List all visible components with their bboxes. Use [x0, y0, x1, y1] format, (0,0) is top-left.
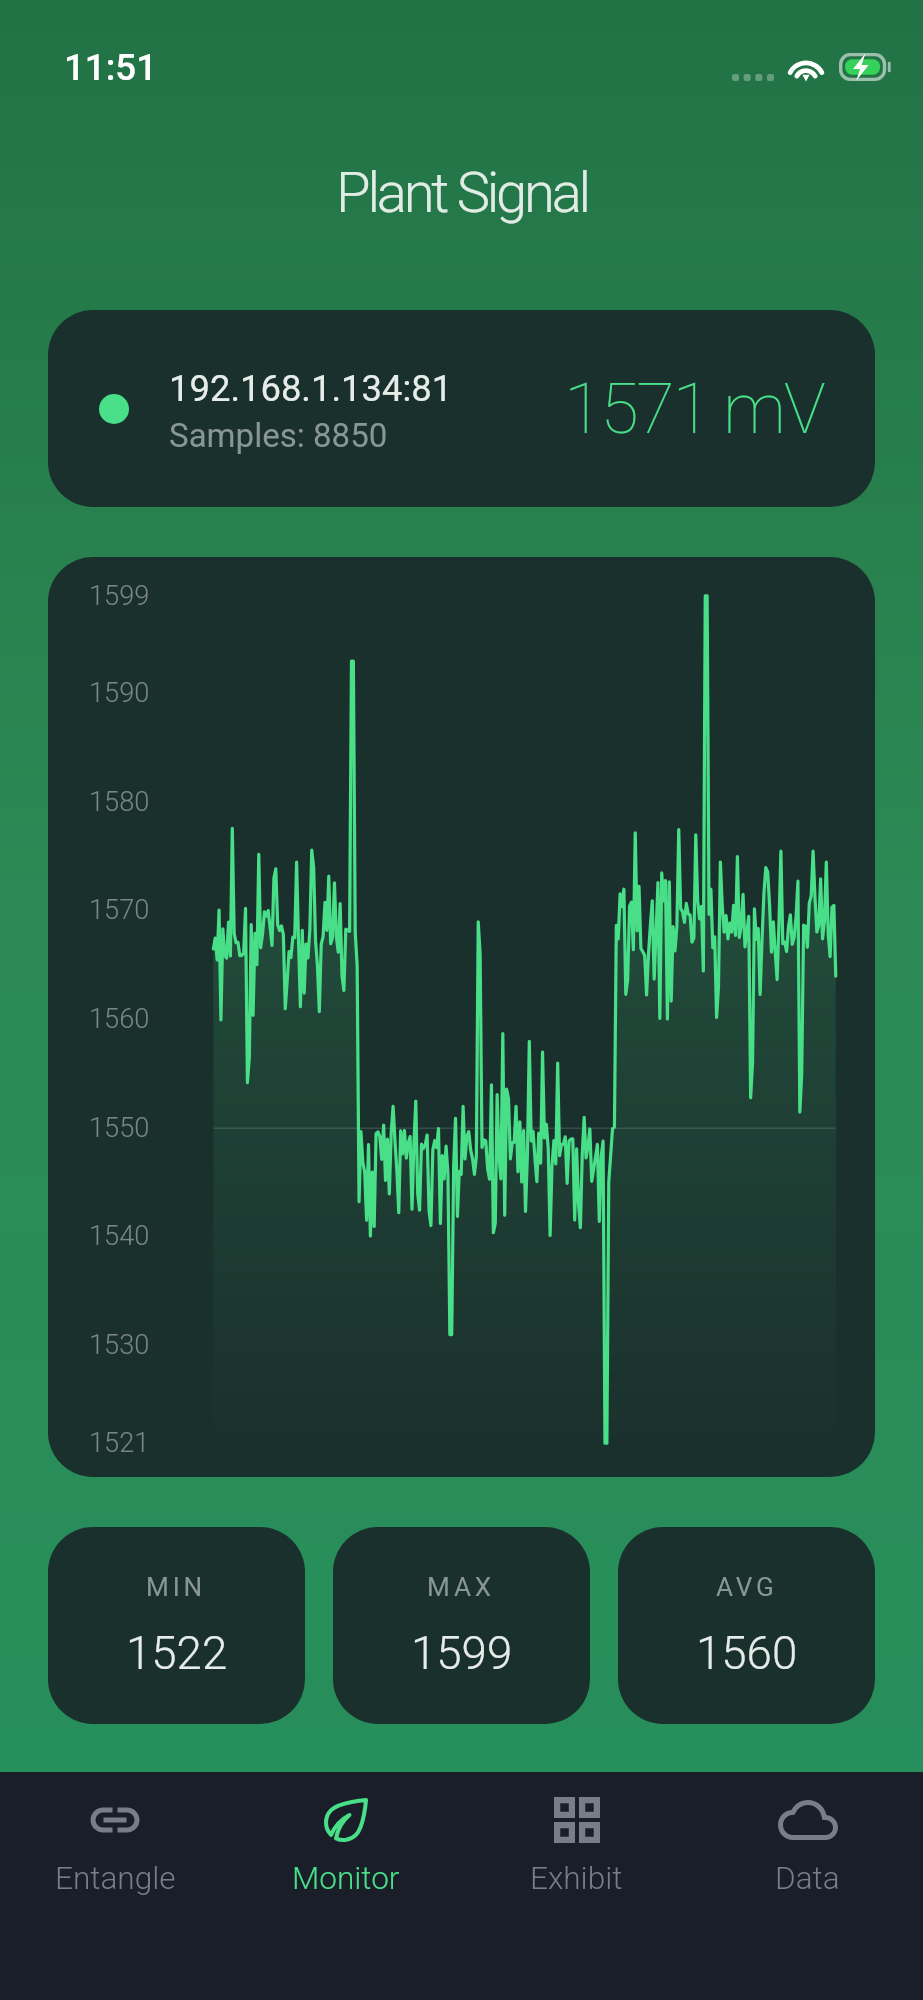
button[interactable]: AVG — [618, 1527, 875, 1724]
button[interactable]: Entangle — [0, 1772, 230, 2000]
staticText: 1560 — [696, 1627, 798, 1680]
staticText: 192.168.1.134:81 — [169, 367, 453, 410]
staticText: Entangle — [55, 1860, 176, 1897]
staticText: 1570 — [89, 894, 150, 926]
staticText: 1580 — [89, 786, 150, 818]
staticText: Samples: 8850 — [169, 416, 388, 455]
other: Exhibit — [547, 1790, 607, 1850]
staticText: Plant Signal — [336, 160, 588, 226]
button[interactable]: MIN — [48, 1527, 305, 1724]
staticText: 1599 — [89, 580, 150, 612]
staticText: MIN — [146, 1572, 207, 1603]
staticText: 1540 — [89, 1220, 150, 1252]
button[interactable]: MAX — [333, 1527, 590, 1724]
button[interactable]: Exhibit — [461, 1772, 692, 2000]
staticText: AVG — [716, 1572, 778, 1603]
staticText: 1571 mV — [564, 368, 824, 450]
staticText: 1550 — [89, 1112, 150, 1144]
button[interactable]: 1599 — [48, 557, 875, 1477]
staticText: 1560 — [89, 1003, 150, 1035]
other: Data — [778, 1790, 838, 1850]
staticText: 1599 — [411, 1627, 513, 1680]
button[interactable]: Monitor — [230, 1772, 461, 2000]
button[interactable]: Data — [692, 1772, 923, 2000]
staticText: MAX — [427, 1572, 496, 1603]
staticText: Exhibit — [530, 1860, 623, 1897]
staticText: 1530 — [89, 1329, 150, 1361]
other: Entangle — [85, 1790, 145, 1850]
staticText: Data — [775, 1860, 840, 1897]
other: Monitor — [316, 1790, 376, 1850]
button[interactable]: 192.168.1.134:81 — [48, 310, 875, 507]
staticText: 11:51 — [64, 46, 158, 89]
staticText: 1521 — [89, 1427, 150, 1459]
staticText: 1522 — [126, 1627, 228, 1680]
staticText: Monitor — [292, 1860, 400, 1897]
staticText: 1590 — [89, 677, 150, 709]
